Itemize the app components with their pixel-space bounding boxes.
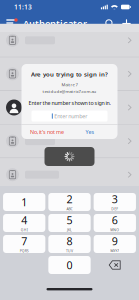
staticText: JKL	[67, 227, 72, 232]
staticText: 5	[66, 213, 72, 227]
staticText: 8	[66, 234, 72, 248]
staticText: 11:13	[14, 2, 32, 12]
button[interactable]: Delete	[94, 256, 136, 274]
staticText: WXYZ	[110, 248, 119, 253]
button[interactable]: 2	[48, 193, 91, 211]
staticText: 4	[21, 213, 27, 227]
button[interactable]: Menu	[2, 14, 22, 33]
staticText: GHI	[21, 227, 28, 232]
button[interactable]: 4	[3, 214, 45, 232]
button[interactable]: No, it's not me	[25, 125, 68, 139]
button[interactable]: Account	[0, 125, 139, 158]
staticText: 2	[66, 192, 72, 206]
staticText: No, it's not me	[30, 128, 64, 136]
button[interactable]: Add account	[118, 14, 135, 33]
staticText: Authenticator	[23, 17, 87, 30]
button[interactable]: 3	[94, 193, 136, 211]
staticText: TUV	[66, 248, 73, 253]
staticText: MNO	[110, 227, 119, 232]
staticText: ABC	[66, 206, 72, 211]
button[interactable]: 7	[3, 235, 45, 253]
button[interactable]: 0	[48, 256, 91, 274]
button[interactable]: Yes	[68, 125, 111, 139]
button[interactable]: Account	[0, 57, 139, 90]
staticText: PQRS	[20, 248, 29, 253]
staticText: 6	[112, 213, 118, 227]
button[interactable]: 1	[3, 193, 45, 211]
staticText: Enter number	[54, 112, 87, 120]
button[interactable]: Account	[0, 91, 139, 124]
staticText: Maitre 7	[61, 82, 77, 87]
button[interactable]: Account	[0, 158, 139, 191]
staticText: Are you trying to sign in?	[31, 70, 108, 78]
staticText: 7	[21, 234, 27, 248]
staticText: 9	[112, 234, 118, 248]
button[interactable]: Account	[0, 24, 139, 57]
button[interactable]: 6	[94, 214, 136, 232]
staticText: 1	[21, 195, 27, 209]
staticText: Enter the number shown to sign in.	[28, 99, 110, 107]
staticText: DEF	[111, 206, 118, 211]
button[interactable]: 9	[94, 235, 136, 253]
staticText: testdude@matrix7.com.au	[42, 88, 96, 94]
button[interactable]: Search	[101, 14, 118, 33]
staticText: 0	[66, 258, 72, 272]
staticText: Yes	[85, 128, 94, 136]
button[interactable]: 5	[48, 214, 91, 232]
staticText: 3	[112, 192, 118, 206]
button[interactable]: 8	[48, 235, 91, 253]
